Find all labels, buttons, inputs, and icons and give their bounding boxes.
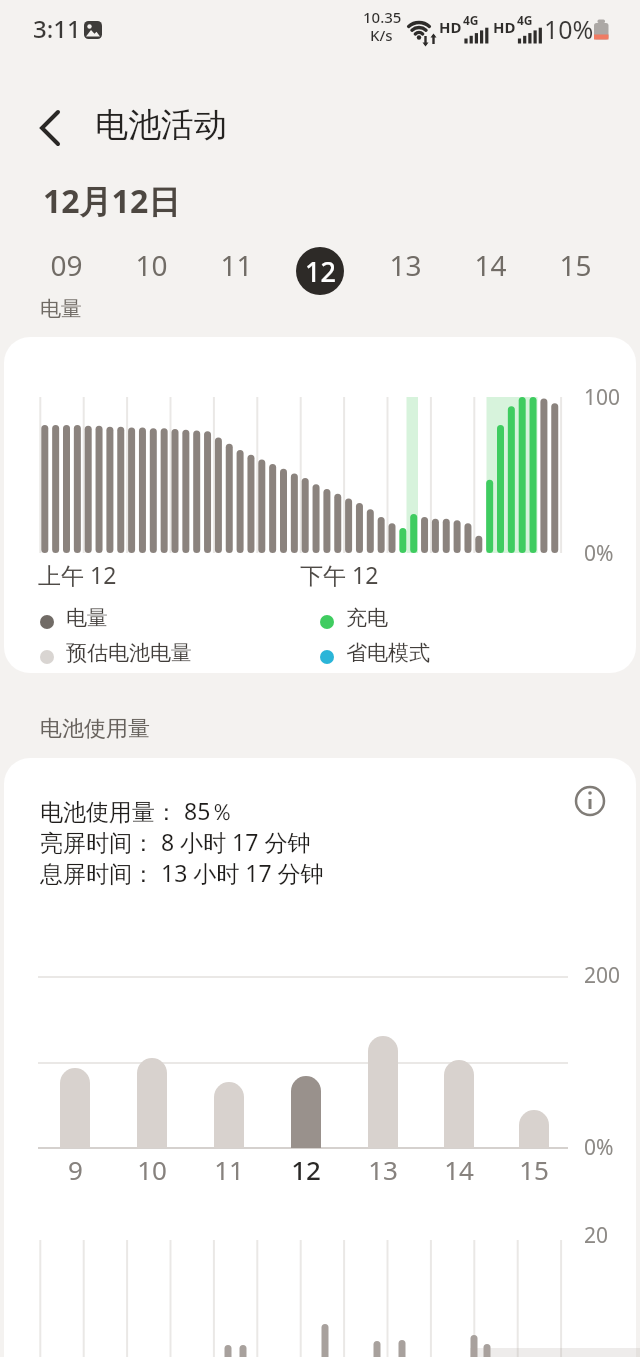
- staticText: 10: [135, 246, 168, 284]
- staticText: HD: [439, 17, 462, 37]
- button[interactable]: [4, 337, 636, 673]
- staticText: 20: [584, 1221, 609, 1250]
- staticText: 0%: [584, 1133, 614, 1162]
- staticText: 3:11: [33, 12, 81, 45]
- button[interactable]: 09: [36, 246, 96, 284]
- button[interactable]: 11: [206, 246, 266, 284]
- staticText: 13: [389, 246, 422, 284]
- staticText: 9: [68, 1152, 83, 1187]
- staticText: 充电: [346, 605, 388, 631]
- staticText: 电池活动: [95, 104, 227, 146]
- staticText: 100: [584, 383, 621, 412]
- staticText: 12: [305, 253, 336, 290]
- staticText: 12: [291, 1152, 321, 1187]
- staticText: 10.35: [363, 7, 402, 27]
- staticText: 省电模式: [346, 640, 430, 666]
- staticText: 11: [214, 1152, 244, 1187]
- staticText: 11: [220, 246, 253, 284]
- staticText: 预估电池电量: [66, 640, 192, 666]
- staticText: 13: [368, 1152, 398, 1187]
- staticText: 电量: [66, 605, 108, 631]
- staticText: 14: [444, 1152, 474, 1187]
- button[interactable]: [4, 758, 636, 1357]
- button[interactable]: [570, 781, 610, 821]
- staticText: 上午 12: [38, 559, 117, 590]
- staticText: 0%: [584, 539, 614, 568]
- staticText: 电池使用量: [40, 715, 150, 743]
- staticText: 4G: [517, 12, 533, 28]
- staticText: 14: [474, 246, 507, 284]
- staticText: 10%: [544, 12, 594, 46]
- staticText: K/s: [370, 25, 393, 45]
- staticText: 15: [519, 1152, 549, 1187]
- button[interactable]: 15: [545, 246, 605, 284]
- button[interactable]: 14: [460, 246, 520, 284]
- staticText: 09: [50, 246, 83, 284]
- staticText: 电池使用量： 85％: [40, 795, 234, 826]
- button[interactable]: [30, 104, 78, 152]
- button[interactable]: 12: [296, 247, 344, 295]
- staticText: 息屏时间： 13 小时 17 分钟: [40, 857, 324, 888]
- staticText: 4G: [463, 12, 479, 28]
- staticText: 电量: [40, 296, 82, 322]
- staticText: HD: [493, 17, 516, 37]
- staticText: 亮屏时间： 8 小时 17 分钟: [40, 826, 311, 857]
- button[interactable]: 13: [375, 246, 435, 284]
- staticText: 200: [584, 961, 621, 990]
- staticText: 15: [559, 246, 592, 284]
- staticText: 10: [137, 1152, 167, 1187]
- staticText: 下午 12: [300, 559, 379, 590]
- staticText: 12月12日: [43, 179, 181, 223]
- button[interactable]: 10: [121, 246, 181, 284]
